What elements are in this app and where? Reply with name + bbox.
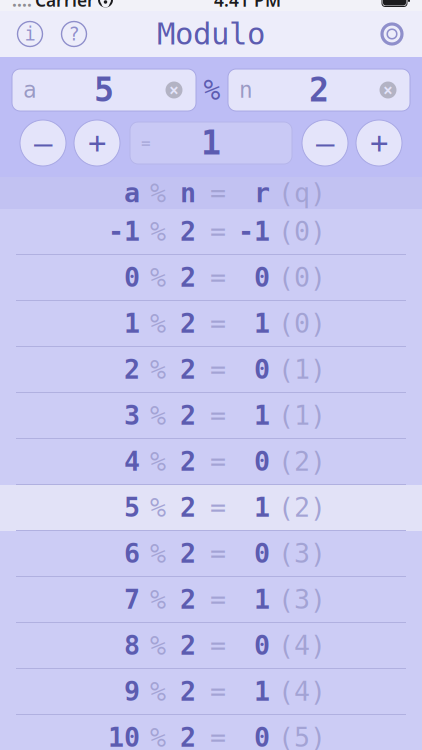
staticText: % — [150, 354, 166, 385]
staticText: .... — [12, 0, 32, 11]
staticText: 2 — [180, 354, 196, 385]
staticText: 2 — [180, 676, 196, 707]
staticText: = — [210, 538, 226, 569]
staticText: 7 — [124, 584, 140, 615]
staticText: 10 — [108, 722, 140, 750]
staticText: = — [210, 400, 226, 431]
staticText: % — [150, 216, 166, 247]
staticText: 4:41 PM — [214, 0, 281, 11]
staticText: = — [210, 262, 226, 293]
staticText: + — [370, 126, 388, 160]
staticText: = — [210, 308, 226, 339]
staticText: Carrier — [35, 0, 95, 11]
button[interactable]: 2 — [0, 347, 422, 393]
button[interactable]: Decrease a — [20, 120, 66, 166]
button[interactable]: 1 — [0, 301, 422, 347]
staticText: 2 — [309, 71, 329, 109]
staticText: (4) — [278, 630, 326, 661]
button[interactable]: Clear n — [377, 79, 399, 101]
staticText: (5) — [278, 722, 326, 750]
staticText: (2) — [278, 446, 326, 477]
staticText: % — [150, 676, 166, 707]
staticText: 8 — [124, 630, 140, 661]
staticText: n — [239, 77, 253, 103]
button[interactable]: Decrease n — [302, 120, 348, 166]
staticText: = — [210, 178, 226, 208]
staticText: 1 — [254, 400, 270, 431]
staticText: % — [150, 262, 166, 293]
staticText: = — [210, 492, 226, 523]
staticText: ? — [68, 23, 79, 45]
staticText: 1 — [254, 492, 270, 523]
staticText: 2 — [180, 584, 196, 615]
staticText: 2 — [180, 722, 196, 750]
staticText: 0 — [254, 722, 270, 750]
staticText: % — [203, 74, 220, 106]
staticText: = — [210, 216, 226, 247]
staticText: 2 — [180, 216, 196, 247]
staticText: 2 — [180, 538, 196, 569]
staticText: % — [150, 308, 166, 339]
staticText: % — [150, 584, 166, 615]
staticText: n — [180, 178, 196, 208]
staticText: 9 — [124, 676, 140, 707]
staticText: 0 — [254, 446, 270, 477]
button[interactable]: 8 — [0, 623, 422, 669]
staticText: 3 — [124, 400, 140, 431]
staticText: + — [88, 126, 106, 160]
staticText: 1 — [254, 308, 270, 339]
button[interactable]: 5 — [0, 485, 422, 531]
staticText: -1 — [108, 216, 140, 247]
button[interactable]: 9 — [0, 669, 422, 715]
staticText: 2 — [180, 308, 196, 339]
staticText: = — [210, 354, 226, 385]
button[interactable]: 3 — [0, 393, 422, 439]
staticText: = — [210, 630, 226, 661]
button[interactable]: -1 — [0, 209, 422, 255]
staticText: Modulo — [157, 17, 265, 51]
staticText: % — [150, 492, 166, 523]
staticText: = — [210, 584, 226, 615]
staticText: = — [210, 446, 226, 477]
staticText: (3) — [278, 538, 326, 569]
staticText: % — [150, 400, 166, 431]
button[interactable]: 0 — [0, 255, 422, 301]
staticText: 0 — [254, 354, 270, 385]
button[interactable]: 6 — [0, 531, 422, 577]
staticText: % — [150, 178, 166, 208]
staticText: = — [210, 676, 226, 707]
staticText: 0 — [254, 538, 270, 569]
button[interactable]: Help — [52, 12, 96, 56]
staticText: = — [210, 722, 226, 750]
staticText: (0) — [278, 262, 326, 293]
staticText: 2 — [180, 630, 196, 661]
staticText: × — [383, 78, 393, 101]
staticText: -1 — [238, 216, 270, 247]
button[interactable]: 10 — [0, 715, 422, 750]
button[interactable]: Increase n — [356, 120, 402, 166]
staticText: 5 — [124, 492, 140, 523]
staticText: 6 — [124, 538, 140, 569]
staticText: × — [169, 78, 179, 101]
button[interactable]: Info — [8, 12, 52, 56]
staticText: (2) — [278, 492, 326, 523]
button[interactable]: Clear a — [163, 79, 185, 101]
button[interactable]: Increase a — [74, 120, 120, 166]
button[interactable]: Settings — [370, 12, 414, 56]
staticText: (0) — [278, 308, 326, 339]
staticText: a — [23, 77, 37, 103]
staticText: 0 — [124, 262, 140, 293]
button[interactable]: 4 — [0, 439, 422, 485]
staticText: % — [150, 538, 166, 569]
staticText: 0 — [254, 262, 270, 293]
staticText: – — [316, 126, 334, 160]
button[interactable]: 7 — [0, 577, 422, 623]
staticText: (q) — [278, 178, 326, 208]
staticText: 2 — [180, 400, 196, 431]
staticText: i — [24, 23, 35, 45]
staticText: (1) — [278, 354, 326, 385]
staticText: 1 — [254, 676, 270, 707]
staticText: 0 — [254, 630, 270, 661]
staticText: a — [124, 178, 140, 208]
staticText: 1 — [201, 124, 221, 162]
